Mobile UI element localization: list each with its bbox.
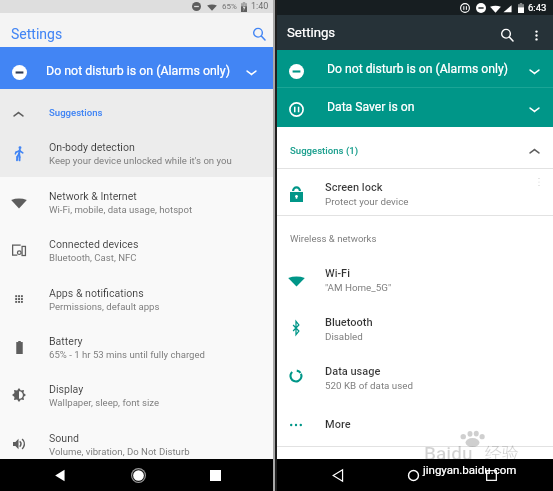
button[interactable]: Data Saver is on [277,88,553,127]
staticText: Volume, vibration, Do Not Disturb [49,446,190,457]
button[interactable]: Bluetooth [277,305,553,353]
staticText: Apps & notifications [49,287,144,299]
button[interactable]: Display [0,371,273,419]
staticText: Bluetooth [325,316,373,329]
button[interactable]: Wi-Fi [277,256,553,304]
staticText: "AM Home_5G" [325,282,392,293]
staticText: Connected devices [49,238,139,250]
staticText: Permissions, default apps [49,301,160,312]
staticText: Protect your device [325,196,409,207]
button[interactable]: Do not disturb is on (Alarms only) [0,47,273,89]
button[interactable]: Back [324,461,352,489]
staticText: 6:43 [528,2,547,13]
button[interactable]: Suggestions (1) [277,136,553,167]
staticText: Do not disturb is on (Alarms only) [327,62,508,76]
staticText: jingyan.baidu.com [423,463,517,476]
staticText: Settings [11,26,63,42]
staticText: Display [49,383,84,395]
staticText: Data Saver is on [327,100,415,114]
staticText: Battery [49,335,83,347]
staticText: Disabled [325,331,363,342]
button[interactable]: Home [124,461,152,489]
staticText: Wi-Fi, mobile, data usage, hotspot [49,204,193,215]
staticText: 1:40 [251,1,269,12]
staticText: Do not disturb is on (Alarms only) [46,63,230,78]
staticText: 经验 [485,443,519,464]
button[interactable]: More [277,403,553,446]
button[interactable]: Data usage [277,354,553,402]
button[interactable]: More options [524,23,548,47]
button[interactable]: Search [495,23,519,47]
button[interactable]: Network & Internet [0,178,273,226]
staticText: More [325,418,351,431]
button[interactable]: On-body detection [0,129,273,177]
staticText: Wallpaper, sleep, font size [49,397,160,408]
staticText: 65% [222,2,237,11]
button[interactable]: Screen lock [277,171,553,217]
button[interactable]: Do not disturb is on (Alarms only) [277,50,553,87]
button[interactable]: Home [399,461,427,489]
staticText: Data usage [325,365,381,378]
button[interactable]: Sound [0,420,273,468]
staticText: Settings [287,25,336,40]
staticText: Suggestions [49,107,103,118]
staticText: Bluetooth, Cast, NFC [49,252,137,263]
button[interactable]: Recents [201,461,229,489]
staticText: Wi-Fi [325,267,350,280]
staticText: Wireless & networks [290,233,377,244]
button[interactable]: Connected devices [0,226,273,274]
button[interactable]: Recents [477,461,505,489]
staticText: Keep your device unlocked while it's on … [49,155,232,166]
staticText: 65% - 1 hr 53 mins until fully charged [49,349,205,360]
button[interactable]: Search [247,22,270,45]
staticText: Network & Internet [49,190,137,202]
staticText: Screen lock [325,181,383,194]
button[interactable]: Back [46,461,74,489]
staticText: Suggestions (1) [290,145,359,156]
staticText: Sound [49,432,79,444]
staticText: Baidu [424,442,473,464]
button[interactable]: Battery [0,323,273,371]
button[interactable]: Apps & notifications [0,275,273,323]
staticText: 520 KB of data used [325,380,414,391]
button[interactable]: Suggestions [0,100,273,128]
staticText: On-body detection [49,141,135,153]
